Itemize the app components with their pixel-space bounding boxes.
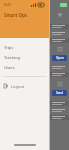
staticText: Trips [4, 45, 14, 50]
staticText: 9:41 [4, 2, 11, 7]
other: Logout [4, 84, 8, 88]
button[interactable]: Tracking [0, 52, 49, 62]
staticText: Tracking [4, 55, 20, 60]
staticText: Smart Ops [4, 12, 27, 18]
staticText: Logout [11, 84, 25, 89]
staticText: Open [56, 56, 64, 60]
button[interactable]: Send [52, 90, 67, 96]
staticText: Send [56, 91, 64, 95]
button[interactable]: Logout [0, 81, 49, 91]
button[interactable]: Open [52, 55, 67, 61]
button[interactable]: Users [0, 62, 49, 72]
button[interactable]: Trips [0, 42, 49, 52]
staticText: Users [4, 65, 15, 70]
